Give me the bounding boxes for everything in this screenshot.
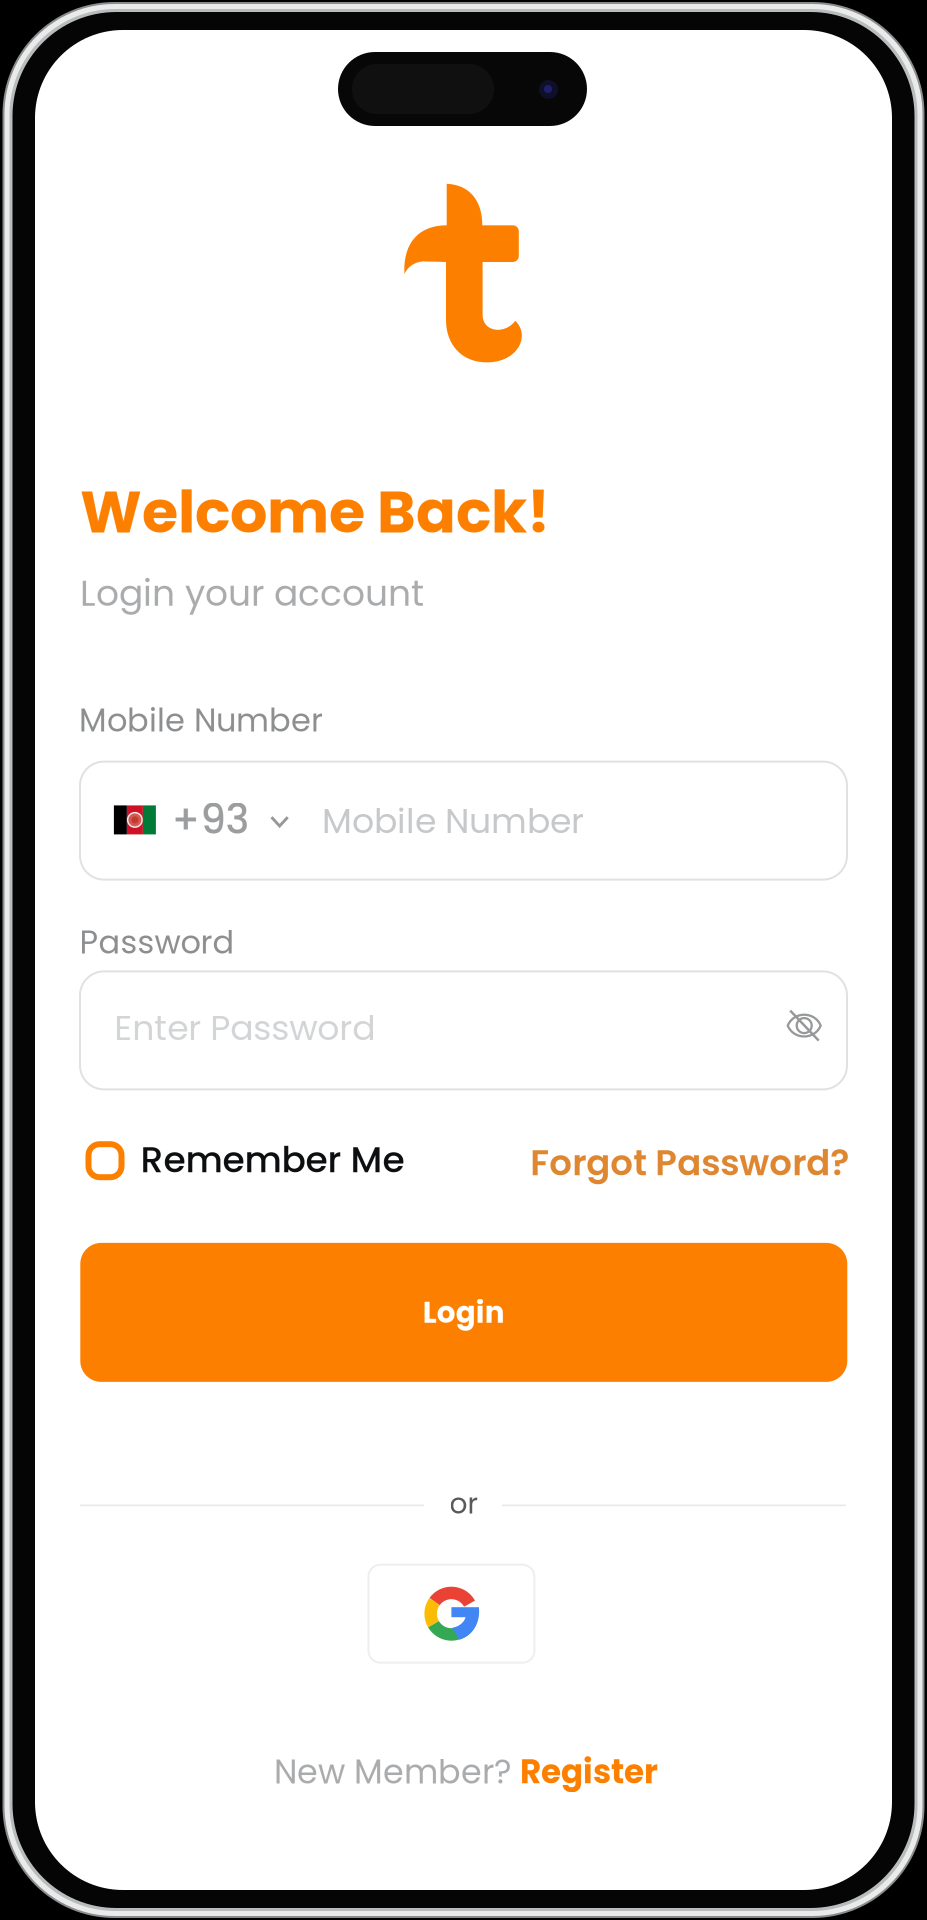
staticText: Mobile Number — [322, 797, 584, 845]
button[interactable]: New Member? — [274, 1748, 658, 1795]
staticText: or — [450, 1484, 478, 1523]
staticText: Login — [423, 1292, 505, 1333]
button[interactable]: Forgot Password? — [530, 1138, 849, 1188]
button[interactable]: +93 — [80, 762, 847, 880]
staticText: Mobile Number — [79, 698, 323, 743]
staticText: Enter Password — [114, 1004, 375, 1052]
button[interactable]: Login — [80, 1243, 847, 1382]
staticText: Welcome Back! — [80, 471, 550, 553]
staticText: Remember Me — [140, 1134, 404, 1185]
staticText: New Member? — [274, 1748, 520, 1795]
staticText: +93 — [171, 791, 249, 847]
button[interactable]: Enter Password — [80, 971, 847, 1089]
button[interactable]: Remember Me — [85, 1134, 404, 1187]
staticText: Register — [520, 1749, 658, 1795]
button[interactable]: Continue with Google — [368, 1565, 534, 1663]
staticText: Login your account — [80, 568, 424, 618]
staticText: Password — [80, 920, 235, 965]
staticText: Forgot Password? — [530, 1138, 849, 1188]
